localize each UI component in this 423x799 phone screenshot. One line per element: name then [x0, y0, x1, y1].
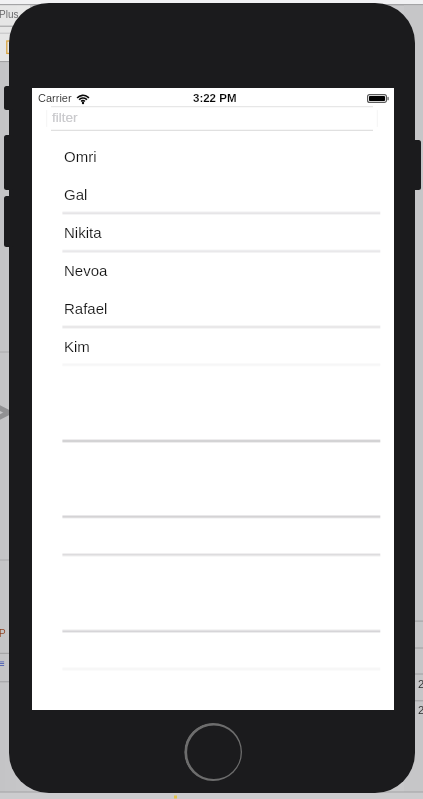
staticText: Carrier: [38, 92, 72, 104]
staticText: 2: [418, 704, 423, 716]
button[interactable]: Kim: [62, 327, 410, 365]
staticText: filter: [52, 110, 78, 125]
button[interactable]: Device button: [4, 86, 14, 110]
staticText: Plus: [0, 9, 19, 20]
staticText: Gal: [64, 186, 88, 203]
staticText: Omri: [64, 148, 97, 165]
button[interactable]: filter: [46, 106, 378, 131]
staticText: P: [0, 628, 6, 639]
staticText: Nikita: [64, 224, 102, 241]
button[interactable]: Device button: [4, 196, 14, 247]
staticText: Rafael: [64, 300, 108, 317]
button[interactable]: Device button: [4, 135, 14, 190]
button[interactable]: Device button: [411, 140, 421, 190]
staticText: 2: [418, 678, 423, 690]
button[interactable]: Rafael: [62, 289, 410, 327]
button[interactable]: Home: [184, 723, 242, 781]
staticText: Kim: [64, 338, 90, 355]
button[interactable]: Gal: [62, 175, 410, 213]
button[interactable]: Nikita: [62, 213, 410, 251]
button[interactable]: Nevoa: [62, 251, 410, 289]
staticText: Nevoa: [64, 262, 108, 279]
staticText: ≡: [0, 658, 5, 669]
staticText: 3:22 PM: [193, 92, 237, 105]
button[interactable]: Omri: [62, 137, 410, 175]
